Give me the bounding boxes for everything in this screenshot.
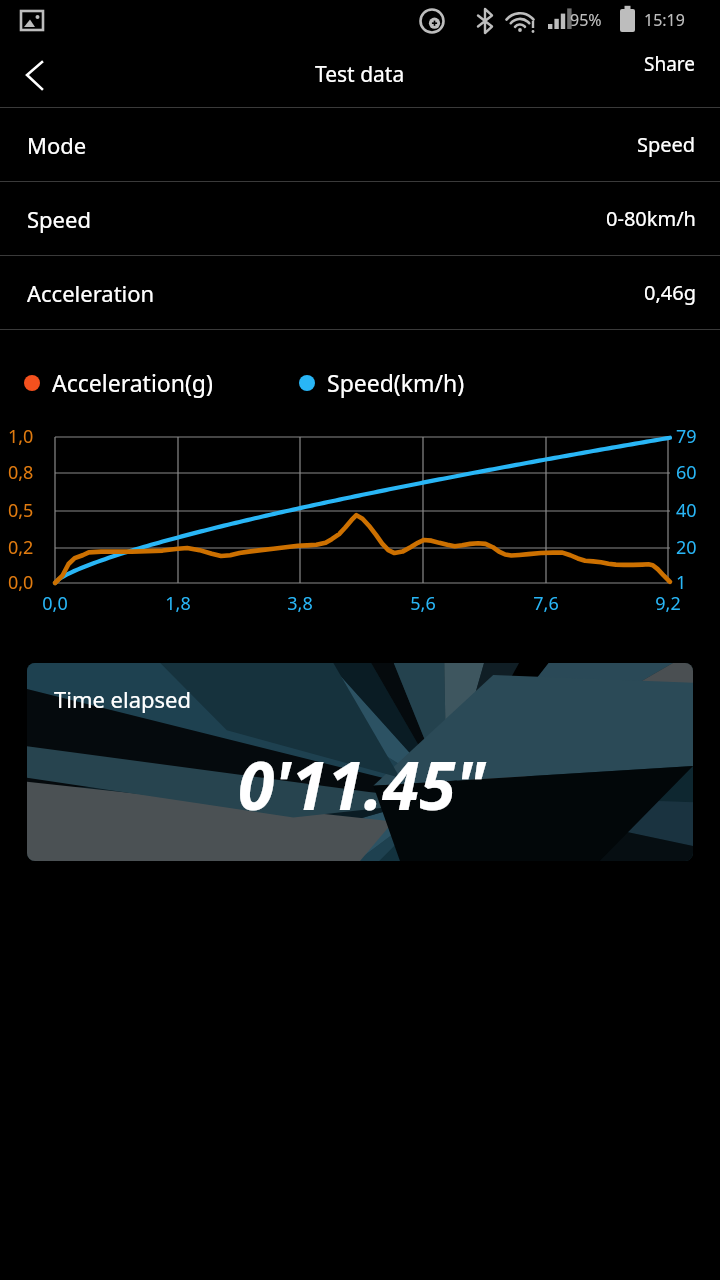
staticText: Acceleration(g) bbox=[52, 367, 213, 398]
staticText: 15:19 bbox=[644, 9, 685, 31]
staticText: 79 bbox=[676, 424, 697, 449]
staticText: Mode bbox=[27, 130, 87, 160]
staticText: 0,8 bbox=[8, 460, 34, 485]
staticText: Speed(km/h) bbox=[327, 367, 465, 398]
staticText: 7,6 bbox=[533, 591, 559, 616]
button[interactable]: Speed(km/h) bbox=[299, 367, 465, 398]
staticText: 0,0 bbox=[8, 570, 34, 595]
button[interactable]: Acceleration(g) bbox=[24, 367, 213, 398]
staticText: 9,2 bbox=[655, 591, 681, 616]
button[interactable]: Share bbox=[636, 40, 704, 88]
staticText: 1 bbox=[676, 570, 687, 595]
staticText: 40 bbox=[676, 498, 697, 523]
button[interactable]: Mode bbox=[0, 108, 720, 181]
staticText: 60 bbox=[676, 460, 697, 485]
staticText: Speed bbox=[27, 204, 91, 234]
staticText: 0,0 bbox=[42, 591, 68, 616]
staticText: 0,5 bbox=[8, 498, 34, 523]
staticText: 0-80km/h bbox=[606, 205, 696, 232]
staticText: Acceleration bbox=[27, 278, 155, 308]
staticText: 20 bbox=[676, 535, 697, 560]
button[interactable]: Acceleration bbox=[0, 256, 720, 329]
staticText: Test data bbox=[315, 60, 405, 89]
button[interactable]: Time elapsed bbox=[27, 663, 693, 861]
button[interactable]: Back bbox=[0, 40, 68, 108]
staticText: 0,2 bbox=[8, 535, 34, 560]
staticText: Time elapsed bbox=[54, 684, 192, 714]
staticText: 1,0 bbox=[8, 424, 34, 449]
staticText: Speed bbox=[637, 131, 696, 158]
staticText: 0'11.45" bbox=[238, 739, 486, 829]
staticText: Share bbox=[644, 51, 696, 77]
staticText: 5,6 bbox=[410, 591, 436, 616]
staticText: 0,46g bbox=[644, 279, 696, 306]
staticText: 1,8 bbox=[165, 591, 191, 616]
staticText: 3,8 bbox=[287, 591, 313, 616]
staticText: 95% bbox=[570, 9, 602, 31]
button[interactable]: Speed bbox=[0, 182, 720, 255]
